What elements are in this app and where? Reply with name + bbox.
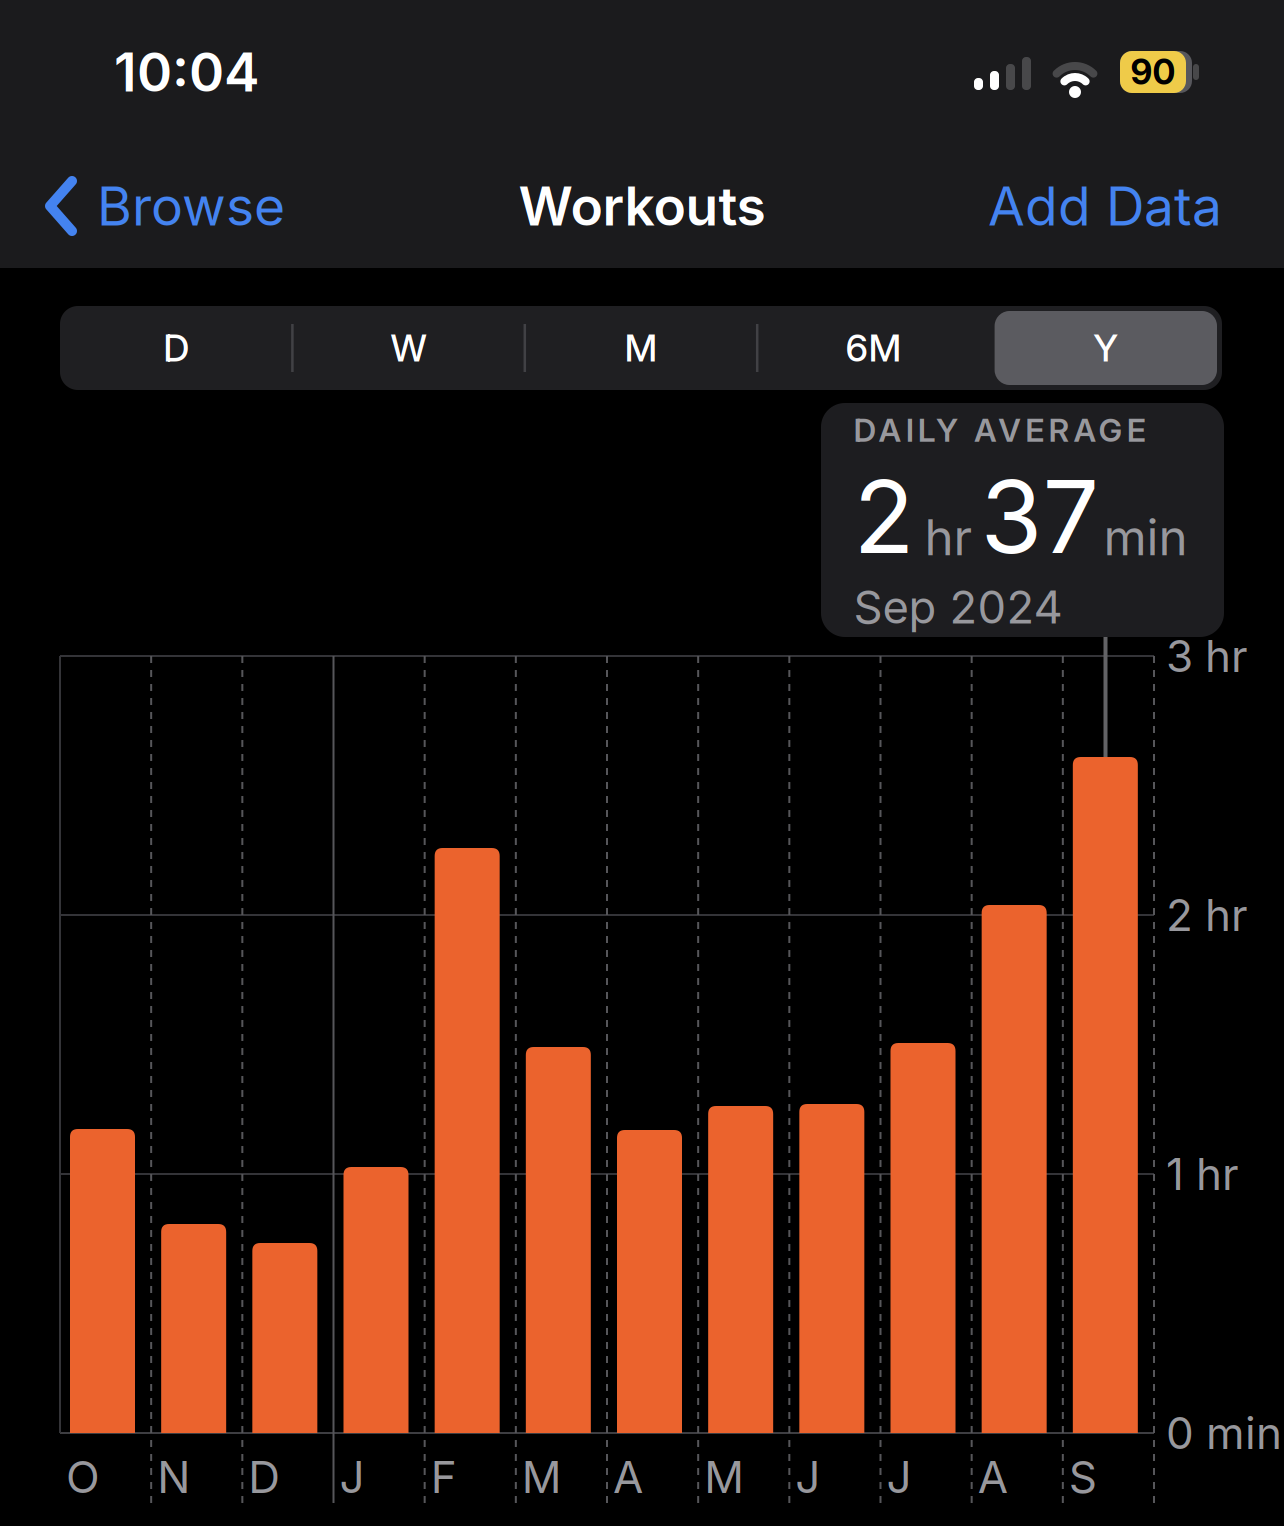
button[interactable]: Browse (45, 174, 285, 237)
staticText: F (431, 1451, 457, 1503)
staticText: 2 hr (1166, 889, 1248, 941)
button[interactable]: W (292, 306, 525, 390)
staticText: 90 (1130, 52, 1175, 92)
staticText: 2 (853, 457, 914, 575)
staticText: D (163, 326, 189, 370)
staticText: O (66, 1451, 100, 1503)
button[interactable]: Add Data (988, 174, 1222, 237)
staticText: W (391, 326, 427, 370)
button[interactable]: M (525, 306, 757, 390)
staticText: Add Data (988, 174, 1222, 237)
staticText: M (624, 326, 657, 370)
staticText: 3 hr (1166, 630, 1248, 682)
staticText: N (157, 1451, 190, 1503)
staticText: A (978, 1451, 1008, 1503)
staticText: Sep 2024 (853, 580, 1062, 634)
staticText: Browse (97, 174, 285, 237)
staticText: 1 hr (1166, 1148, 1239, 1200)
staticText: 37 (980, 457, 1099, 575)
staticText: M (704, 1451, 744, 1503)
staticText: 6M (845, 326, 901, 370)
staticText: A (613, 1451, 643, 1503)
staticText: 10:04 (114, 40, 260, 103)
staticText: J (795, 1451, 820, 1503)
staticText: min (1103, 508, 1187, 566)
staticText: Y (1093, 326, 1118, 370)
staticText: 0 min (1166, 1407, 1282, 1459)
staticText: hr (924, 508, 972, 566)
staticText: M (522, 1451, 562, 1503)
staticText: Workouts (518, 174, 765, 237)
button[interactable]: D (60, 306, 292, 390)
staticText: J (339, 1451, 364, 1503)
staticText: D (248, 1451, 280, 1503)
button[interactable]: 6M (757, 306, 990, 390)
staticText: J (886, 1451, 911, 1503)
staticText: DAILY AVERAGE (853, 411, 1146, 449)
staticText: S (1069, 1451, 1097, 1503)
button[interactable]: Y (990, 306, 1222, 390)
